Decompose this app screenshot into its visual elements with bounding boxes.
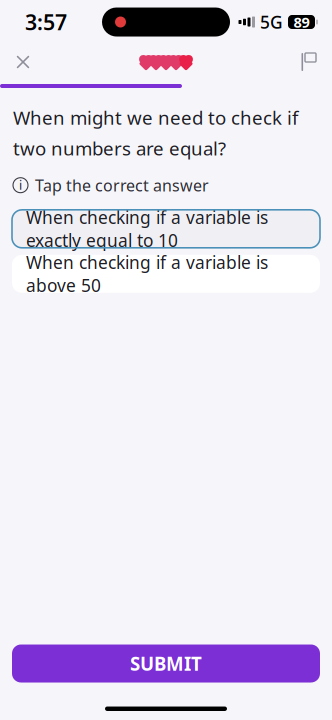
- staticText: When checking if a variable is exactly e…: [26, 206, 268, 252]
- staticText: 5G: [260, 10, 283, 33]
- staticText: Tap the correct answer: [35, 175, 209, 196]
- staticText: 3:57: [25, 8, 67, 36]
- button[interactable]: When checking if a variable is above 50: [12, 255, 320, 293]
- staticText: When might we need to check if two numbe…: [13, 105, 298, 161]
- button[interactable]: Close: [0, 47, 46, 77]
- button[interactable]: SUBMIT: [12, 644, 320, 682]
- staticText: 89: [293, 12, 309, 32]
- staticText: i: [19, 177, 22, 193]
- staticText: When checking if a variable is above 50: [26, 251, 268, 297]
- button[interactable]: When checking if a variable is exactly e…: [12, 210, 320, 248]
- staticText: SUBMIT: [130, 651, 202, 676]
- button[interactable]: Report a problem: [286, 47, 332, 77]
